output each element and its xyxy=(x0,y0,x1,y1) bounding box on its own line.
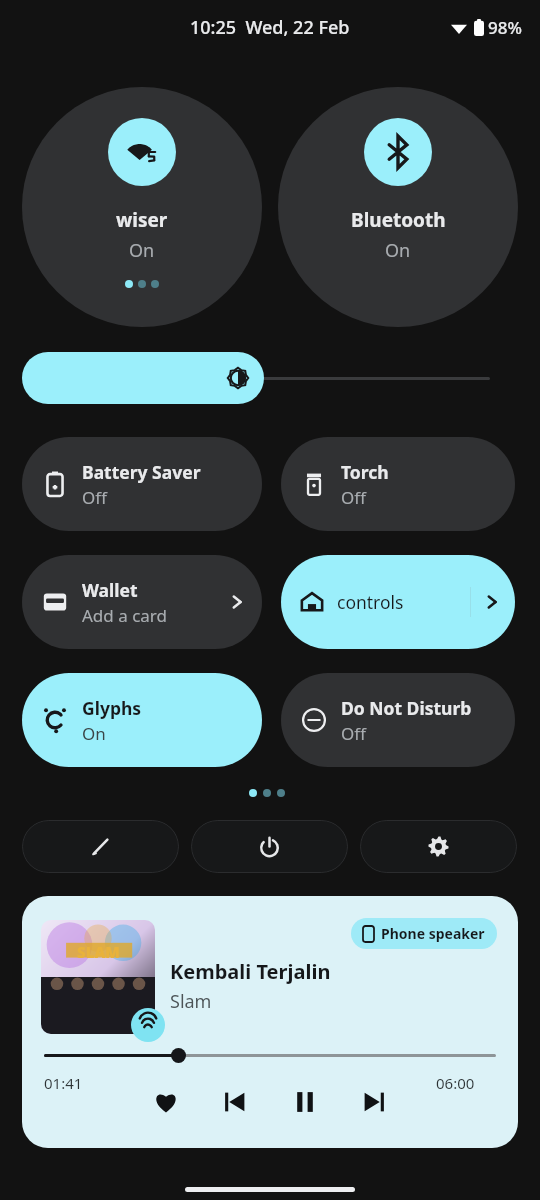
staticText: 98% xyxy=(488,16,522,39)
staticText: Torch xyxy=(341,460,389,484)
button[interactable]: Torch xyxy=(281,437,515,531)
button[interactable]: Bluetooth xyxy=(278,87,518,327)
button[interactable]: Pause xyxy=(283,1080,327,1124)
button[interactable]: Brightness xyxy=(22,352,264,404)
button[interactable]: Wallet xyxy=(22,555,262,649)
staticText: Battery Saver xyxy=(82,460,201,484)
button[interactable]: Power xyxy=(191,820,348,873)
staticText: 10:25 Wed, 22 Feb xyxy=(190,15,350,40)
staticText: Add a card xyxy=(82,604,167,627)
staticText: 01:41 xyxy=(44,1073,83,1093)
button[interactable]: Edit xyxy=(22,820,179,873)
staticText: On xyxy=(82,722,106,745)
button[interactable]: Glyphs xyxy=(22,673,262,767)
staticText: Wallet xyxy=(82,578,138,602)
button[interactable]: Settings xyxy=(360,820,517,873)
button[interactable]: Do Not Disturb xyxy=(281,673,515,767)
staticText: Off xyxy=(82,486,107,509)
button[interactable]: Favourite xyxy=(144,1080,188,1124)
button[interactable]: Device controls xyxy=(281,555,515,649)
staticText: Do Not Disturb xyxy=(341,696,472,720)
staticText: wiser xyxy=(116,207,168,233)
staticText: 06:00 xyxy=(436,1073,475,1093)
staticText: Off xyxy=(341,722,366,745)
button[interactable]: Phone speaker xyxy=(351,918,497,949)
button[interactable]: Previous xyxy=(213,1080,257,1124)
button[interactable]: Wi-Fi xyxy=(22,87,262,327)
staticText: Glyphs xyxy=(82,696,142,720)
staticText: Off xyxy=(341,486,366,509)
staticText: Slam xyxy=(170,989,212,1014)
staticText: SLAM xyxy=(77,942,120,962)
staticText: On xyxy=(129,238,155,263)
button[interactable]: Next xyxy=(352,1080,396,1124)
staticText: controls xyxy=(337,590,470,614)
staticText: Phone speaker xyxy=(381,924,485,943)
staticText: Bluetooth xyxy=(351,207,446,233)
staticText: On xyxy=(385,238,411,263)
button[interactable]: Battery Saver xyxy=(22,437,262,531)
staticText: Kembali Terjalin xyxy=(170,958,331,985)
